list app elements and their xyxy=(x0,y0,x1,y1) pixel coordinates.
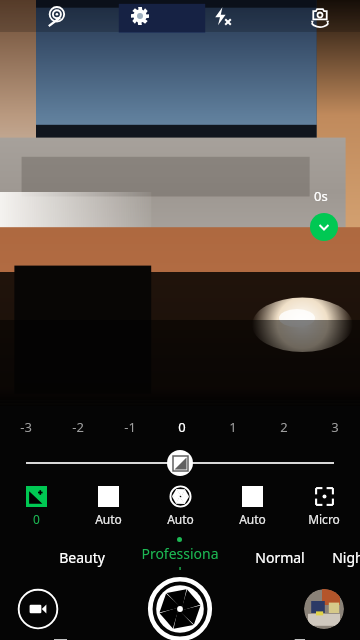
button[interactable]: Professional xyxy=(140,544,220,570)
button[interactable]: Pa xyxy=(356,544,360,570)
button[interactable]: Normal xyxy=(240,544,320,570)
button[interactable]: Flash off xyxy=(206,0,238,32)
button[interactable]: HDR xyxy=(42,0,74,32)
staticText: Night xyxy=(332,548,360,567)
staticText: 0s xyxy=(314,187,328,205)
button[interactable]: Expand xyxy=(310,213,338,241)
button[interactable]: Night xyxy=(310,544,360,570)
staticText: Beauty xyxy=(59,548,105,567)
button[interactable]: Switch camera xyxy=(302,0,338,32)
button[interactable]: Exposure slider xyxy=(0,448,360,478)
button[interactable]: Beauty xyxy=(42,544,122,570)
staticText: Auto xyxy=(239,511,266,527)
staticText: Professional xyxy=(140,544,220,570)
button[interactable]: Shutter xyxy=(147,578,213,640)
staticText: Auto xyxy=(167,511,194,527)
button[interactable]: 0 xyxy=(0,486,72,532)
staticText: 0 xyxy=(33,511,40,527)
button[interactable]: Micro xyxy=(288,486,360,532)
staticText: -1 xyxy=(124,418,136,436)
staticText: 1 xyxy=(229,418,237,436)
staticText: -3 xyxy=(20,418,32,436)
staticText: 0 xyxy=(178,418,186,436)
button[interactable]: Record video xyxy=(16,587,60,631)
staticText: -2 xyxy=(72,418,84,436)
button[interactable]: Settings xyxy=(124,0,156,32)
button[interactable]: Auto xyxy=(144,486,216,532)
button[interactable]: Auto xyxy=(72,486,144,532)
staticText: 3 xyxy=(331,418,339,436)
staticText: Normal xyxy=(255,548,305,567)
staticText: Auto xyxy=(95,511,122,527)
staticText: 2 xyxy=(280,418,288,436)
button[interactable]: Gallery xyxy=(304,589,344,629)
staticText: Micro xyxy=(308,511,340,527)
button[interactable]: Auto xyxy=(216,486,288,532)
